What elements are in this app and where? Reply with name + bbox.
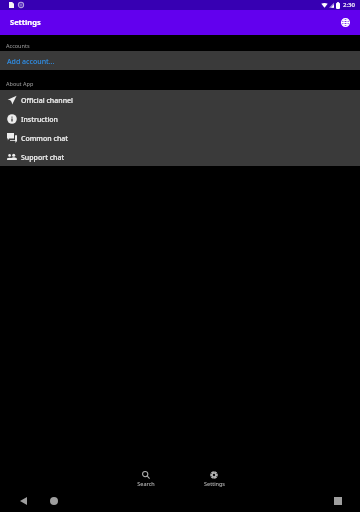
button[interactable]: Official channel xyxy=(0,90,360,109)
staticText: Support chat xyxy=(21,153,65,163)
button[interactable]: Add account... xyxy=(0,51,360,70)
staticText: Settings xyxy=(204,480,225,487)
button[interactable]: Home xyxy=(47,494,61,508)
button[interactable]: Instruction xyxy=(0,109,360,128)
staticText: Official channel xyxy=(21,96,73,106)
button[interactable]: Language xyxy=(335,12,356,33)
button[interactable]: Back xyxy=(16,494,30,508)
staticText: About App xyxy=(6,80,34,87)
button[interactable]: Support chat xyxy=(0,147,360,166)
staticText: Accounts xyxy=(6,42,30,49)
button[interactable]: Common chat xyxy=(0,128,360,147)
staticText: Search xyxy=(137,480,155,487)
button[interactable]: Recents xyxy=(331,494,345,508)
staticText: Instruction xyxy=(21,115,58,125)
staticText: Add account... xyxy=(7,57,55,67)
button[interactable]: Search xyxy=(122,470,170,487)
staticText: 2:30 xyxy=(343,1,355,9)
staticText: Common chat xyxy=(21,134,68,144)
button[interactable]: Settings xyxy=(190,470,238,487)
staticText: Settings xyxy=(10,17,41,27)
